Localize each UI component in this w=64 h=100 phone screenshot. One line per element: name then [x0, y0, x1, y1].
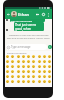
button[interactable]: Emoji — [43, 75, 46, 78]
button[interactable]: Emoji — [6, 75, 9, 78]
staticText: Type a message — [11, 45, 31, 49]
button[interactable]: Emoji — [48, 70, 51, 73]
button[interactable]: Emoji — [6, 65, 9, 68]
button[interactable]: Emoji — [43, 70, 46, 73]
button[interactable]: Emoji — [43, 65, 46, 68]
button[interactable]: Emoji — [38, 70, 41, 73]
button[interactable]: Emoji — [32, 80, 35, 83]
button[interactable]: Emoji — [38, 55, 41, 58]
button[interactable]: Emoji — [32, 70, 35, 73]
button[interactable]: Emoji — [22, 55, 25, 58]
button[interactable]: Emoji — [22, 65, 25, 68]
staticText: SMILEYS & PEOPLE — [7, 52, 27, 55]
button[interactable]: Emoji — [6, 55, 9, 58]
button[interactable]: That just seems good, when about, where … — [14, 22, 44, 31]
button[interactable]: Call — [40, 11, 46, 17]
button[interactable]: Emoji — [38, 80, 41, 83]
button[interactable]: Emoji — [22, 60, 25, 63]
button[interactable]: Back — [6, 12, 11, 17]
button[interactable]: Emoji — [38, 65, 41, 68]
button[interactable]: Emoji — [43, 55, 46, 58]
button[interactable]: Emoji — [17, 80, 20, 83]
button[interactable]: Emoji — [43, 80, 46, 83]
button[interactable]: Send — [48, 45, 52, 49]
button[interactable]: Emoji — [17, 70, 20, 73]
button[interactable]: Emoji — [17, 55, 20, 58]
button[interactable]: Emoji — [11, 55, 14, 58]
button[interactable]: Emoji — [17, 60, 20, 63]
button[interactable]: Emoji — [32, 65, 35, 68]
button[interactable]: Emoji — [27, 75, 30, 78]
button[interactable]: Emoji — [27, 55, 30, 58]
button[interactable]: Emoji — [6, 80, 9, 83]
button[interactable]: Emoji — [6, 60, 9, 63]
button[interactable]: Emoji — [48, 75, 51, 78]
button[interactable]: Emoji — [27, 70, 30, 73]
button[interactable]: Emoji — [27, 60, 30, 63]
button[interactable]: Emoji — [32, 55, 35, 58]
button[interactable]: Emoji — [11, 70, 14, 73]
button[interactable]: Emoji — [32, 60, 35, 63]
staticText: Messages to this chat are now secured wi… — [5, 34, 52, 40]
button[interactable]: Video call — [34, 11, 40, 17]
button[interactable]: Emoji — [48, 80, 51, 83]
button[interactable]: Emoji — [32, 75, 35, 78]
button[interactable]: Emoji — [22, 75, 25, 78]
button[interactable]: Emoji — [48, 65, 51, 68]
button[interactable]: Emoji — [48, 55, 51, 58]
button[interactable]: Emoji — [17, 65, 20, 68]
button[interactable]: Emoji — [11, 75, 14, 78]
button[interactable]: Emoji — [38, 60, 41, 63]
button[interactable]: More options — [46, 12, 51, 17]
button[interactable]: Emoji — [22, 70, 25, 73]
button[interactable]: Emoji — [11, 65, 14, 68]
staticText: That just seems good, when about, where … — [15, 23, 44, 31]
button[interactable]: Emoji — [27, 65, 30, 68]
button[interactable]: Emoji — [38, 75, 41, 78]
button[interactable]: Contact photo — [11, 11, 17, 17]
button[interactable]: Emoji — [11, 80, 14, 83]
button[interactable]: Emoji — [48, 60, 51, 63]
button[interactable]: Emoji — [43, 60, 46, 63]
button[interactable]: see you tomorrow! — [10, 19, 45, 22]
button[interactable]: Emoji — [11, 60, 14, 63]
button[interactable]: Emoji — [6, 70, 9, 73]
button[interactable]: Type a message — [6, 44, 47, 50]
staticText: see you tomorrow! — [11, 19, 33, 22]
staticText: Ethan — [18, 12, 30, 17]
button[interactable]: Emoji — [17, 75, 20, 78]
button[interactable]: Emoji — [27, 80, 30, 83]
button[interactable]: Emoji — [22, 80, 25, 83]
